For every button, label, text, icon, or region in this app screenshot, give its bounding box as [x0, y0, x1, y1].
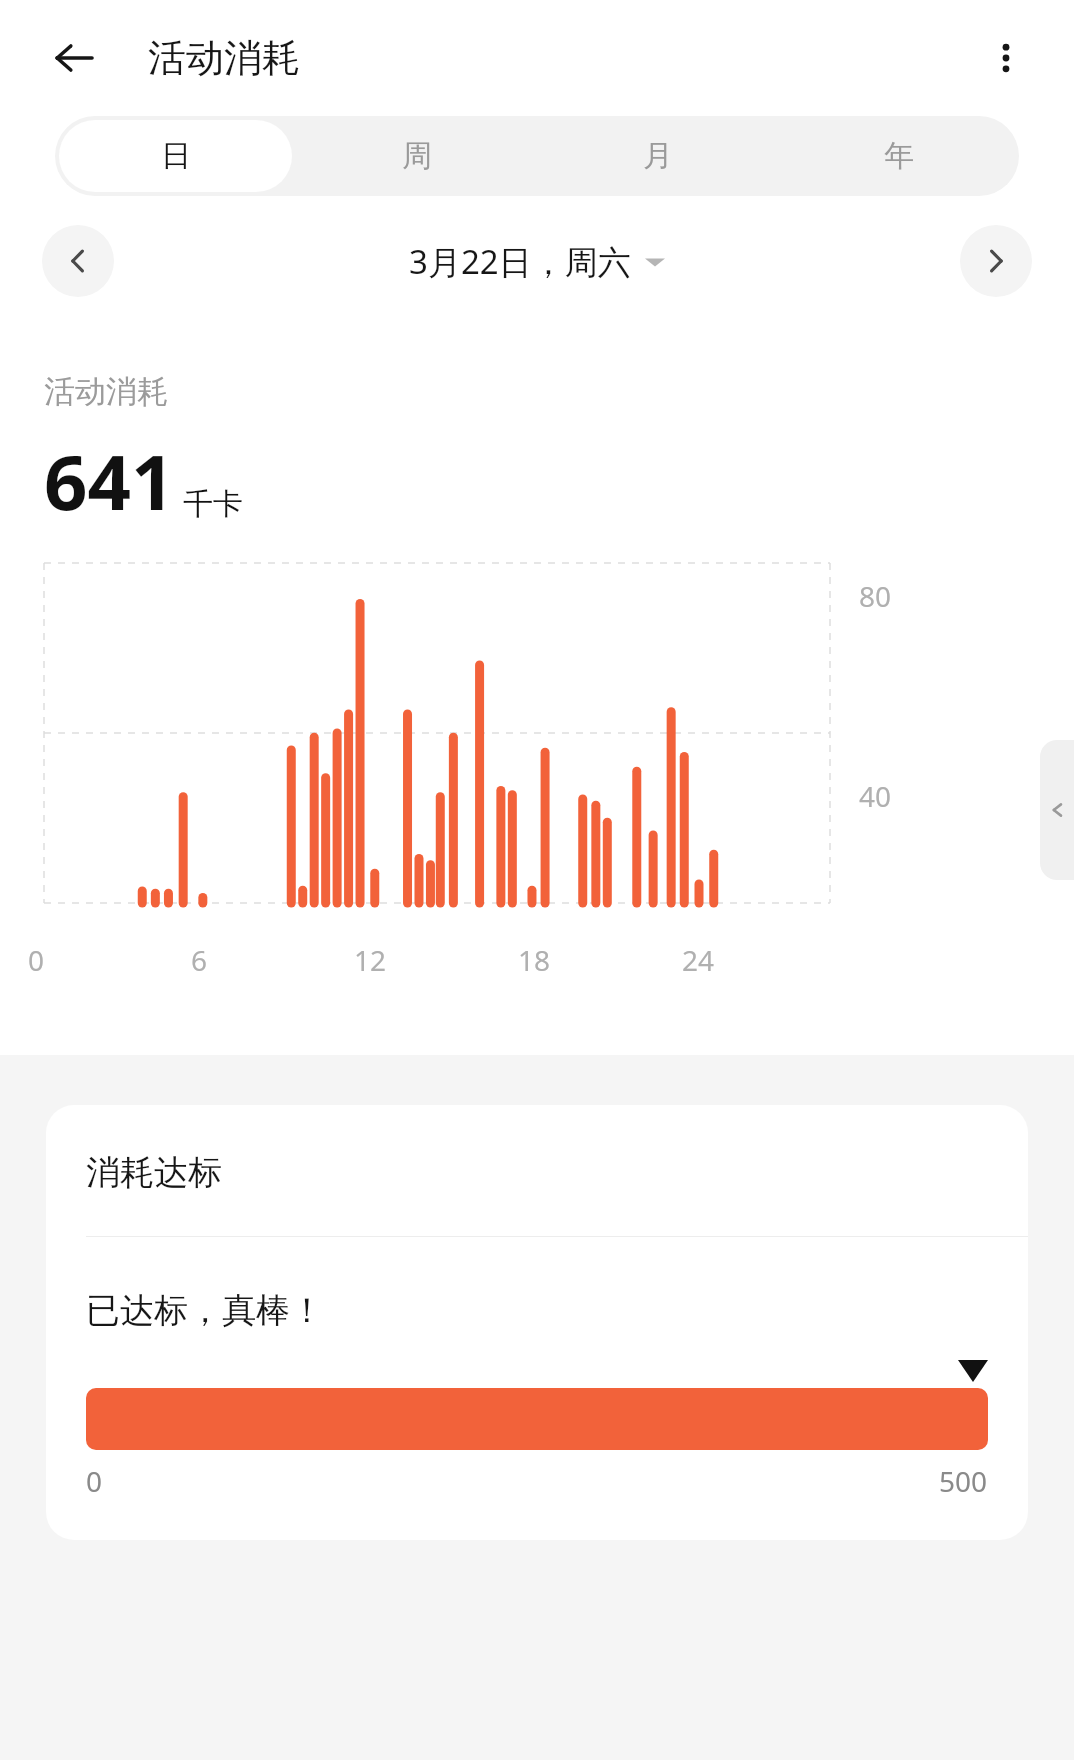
staticText: 已达标，真棒！: [86, 1289, 324, 1332]
staticText: 月: [643, 137, 673, 175]
staticText: 641: [44, 429, 175, 533]
button[interactable]: Previous day: [42, 225, 114, 297]
staticText: 消耗达标: [86, 1151, 222, 1194]
staticText: 40: [859, 777, 892, 815]
staticText: 日: [161, 137, 191, 175]
staticText: 0: [86, 1462, 103, 1500]
staticText: 500: [939, 1462, 988, 1500]
staticText: 18: [518, 941, 551, 979]
button[interactable]: Next day: [960, 225, 1032, 297]
staticText: 千卡: [183, 485, 243, 523]
button[interactable]: 3月22日，周六: [409, 239, 665, 284]
staticText: 年: [884, 137, 914, 175]
button[interactable]: 消耗达标: [46, 1105, 1028, 1540]
staticText: 周: [402, 137, 432, 175]
staticText: 活动消耗: [148, 34, 300, 82]
button[interactable]: 周: [300, 120, 533, 192]
staticText: 80: [859, 577, 892, 615]
staticText: 0: [28, 941, 45, 979]
button[interactable]: Expand panel: [1040, 740, 1074, 880]
button[interactable]: Back: [34, 18, 114, 98]
staticText: 12: [354, 941, 387, 979]
staticText: 6: [191, 941, 208, 979]
button[interactable]: 年: [782, 120, 1015, 192]
staticText: 24: [682, 941, 715, 979]
button[interactable]: 月: [541, 120, 774, 192]
button[interactable]: 日: [59, 120, 292, 192]
staticText: 3月22日，周六: [409, 239, 631, 284]
button[interactable]: More options: [966, 18, 1046, 98]
staticText: 活动消耗: [44, 372, 168, 411]
